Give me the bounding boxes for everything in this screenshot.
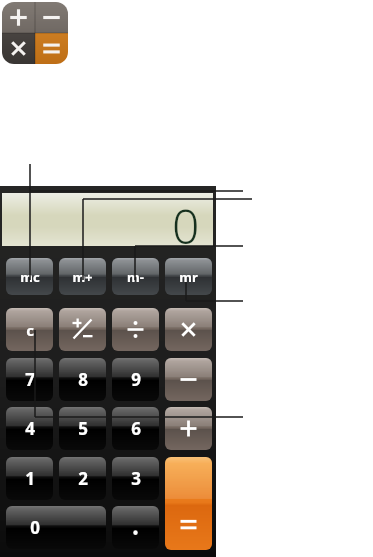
button[interactable]: 8 xyxy=(59,358,106,401)
button[interactable]: mc xyxy=(6,258,53,295)
button[interactable]: 4 xyxy=(6,407,53,450)
staticText: 2 xyxy=(78,467,88,490)
staticText: 6 xyxy=(131,417,141,440)
staticText: 3 xyxy=(131,467,141,490)
button[interactable]: Decimal point xyxy=(112,506,159,549)
staticText: c xyxy=(26,320,34,340)
staticText: m- xyxy=(127,268,144,286)
button[interactable]: mr xyxy=(165,258,212,295)
button[interactable]: Plus minus xyxy=(59,308,106,351)
staticText: 5 xyxy=(78,417,88,440)
button[interactable]: 1 xyxy=(6,457,53,500)
staticText: 7 xyxy=(25,368,35,391)
button[interactable]: Divide xyxy=(112,308,159,351)
button[interactable]: 0 xyxy=(6,506,106,549)
button[interactable]: m+ xyxy=(59,258,106,295)
button[interactable]: Multiply xyxy=(165,308,212,351)
button[interactable]: 3 xyxy=(112,457,159,500)
staticText: 4 xyxy=(25,417,35,440)
staticText: 0 xyxy=(172,193,200,246)
button[interactable]: 5 xyxy=(59,407,106,450)
button[interactable]: Calculator app icon xyxy=(2,2,68,64)
button[interactable]: 9 xyxy=(112,358,159,401)
button[interactable]: Equals xyxy=(165,457,212,550)
button[interactable]: c xyxy=(6,308,53,351)
button[interactable]: 2 xyxy=(59,457,106,500)
staticText: mc xyxy=(20,268,40,286)
staticText: m+ xyxy=(72,268,93,286)
button[interactable]: 6 xyxy=(112,407,159,450)
button[interactable]: 7 xyxy=(6,358,53,401)
staticText: 9 xyxy=(131,368,141,391)
button[interactable]: Plus xyxy=(165,407,212,450)
staticText: 1 xyxy=(25,467,35,490)
staticText: 8 xyxy=(78,368,88,391)
staticText: mr xyxy=(179,268,198,286)
button[interactable]: Minus xyxy=(165,358,212,401)
staticText: 0 xyxy=(30,516,40,539)
button[interactable]: m- xyxy=(112,258,159,295)
